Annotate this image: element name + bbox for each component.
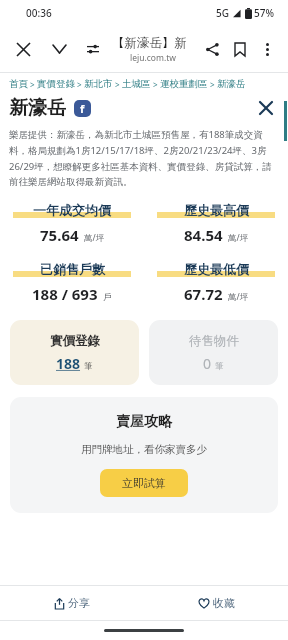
staticText: 分享 bbox=[68, 596, 90, 610]
staticText: 5G bbox=[216, 6, 229, 20]
staticText: 已銷售戶數 bbox=[40, 261, 105, 277]
staticText: f bbox=[80, 101, 85, 116]
button[interactable]: 土城區 bbox=[122, 78, 151, 90]
staticText: 用門牌地址，看你家賣多少 bbox=[81, 443, 207, 456]
staticText: 一年成交均價 bbox=[33, 202, 111, 218]
staticText: 筆 bbox=[84, 361, 93, 372]
staticText: > bbox=[75, 79, 84, 90]
button[interactable]: 新北市 bbox=[84, 78, 113, 90]
button[interactable]: 首頁 bbox=[9, 78, 28, 90]
staticText: 00:36 bbox=[26, 6, 52, 20]
button[interactable]: Bookmark bbox=[226, 35, 254, 63]
staticText: 筆 bbox=[215, 361, 224, 372]
staticText: > bbox=[28, 79, 37, 90]
button[interactable]: 實價登錄 bbox=[37, 78, 75, 90]
staticText: > bbox=[151, 79, 160, 90]
staticText: 萬/坪 bbox=[228, 291, 249, 303]
button[interactable]: 立即試算 bbox=[100, 469, 188, 497]
staticText: 188 bbox=[56, 354, 81, 373]
button[interactable]: Expand bbox=[44, 34, 74, 64]
staticText: 待售物件 bbox=[189, 333, 239, 349]
button[interactable]: Close bbox=[253, 95, 279, 121]
staticText: 萬/坪 bbox=[228, 232, 249, 244]
staticText: 賣屋攻略 bbox=[116, 413, 172, 431]
staticText: 188 / 693 bbox=[32, 284, 98, 304]
staticText: 戶 bbox=[103, 292, 112, 303]
button[interactable]: Close bbox=[8, 34, 38, 64]
staticText: 立即試算 bbox=[122, 476, 166, 490]
staticText: 實價登錄 bbox=[50, 333, 100, 349]
staticText: 0 bbox=[203, 354, 212, 373]
staticText: > bbox=[113, 79, 122, 90]
staticText: 樂居提供：新濠岳，為新北市土城區預售屋，有188筆成交資料，格局規劃為1房12/… bbox=[9, 128, 279, 188]
staticText: leju.com.tw bbox=[130, 52, 176, 64]
button[interactable]: Share on Facebook bbox=[74, 100, 91, 117]
button[interactable]: 已銷售戶數 bbox=[0, 261, 144, 304]
button[interactable]: 運校重劃區 bbox=[160, 78, 208, 90]
staticText: 57% bbox=[254, 6, 274, 20]
button[interactable]: 收藏 bbox=[144, 596, 288, 610]
button[interactable]: 新濠岳 bbox=[217, 78, 246, 90]
staticText: > bbox=[208, 79, 217, 90]
button[interactable]: 歷史最低價 bbox=[144, 261, 288, 304]
staticText: 歷史最低價 bbox=[184, 261, 249, 277]
button[interactable]: 待售物件 bbox=[149, 320, 278, 385]
button[interactable]: 【新濠岳】新北… bbox=[112, 35, 194, 64]
staticText: 75.64 bbox=[40, 225, 79, 245]
staticText: 67.72 bbox=[184, 284, 223, 304]
button[interactable]: 實價登錄 bbox=[10, 320, 139, 385]
staticText: 萬/坪 bbox=[84, 232, 105, 244]
button[interactable]: 歷史最高價 bbox=[144, 202, 288, 245]
button[interactable]: Share bbox=[198, 35, 226, 63]
button[interactable]: More options bbox=[254, 36, 280, 62]
staticText: 【新濠岳】新北… bbox=[112, 35, 194, 51]
staticText: 歷史最高價 bbox=[184, 202, 249, 218]
staticText: 新濠岳 bbox=[9, 96, 66, 120]
button[interactable]: 一年成交均價 bbox=[0, 202, 144, 245]
staticText: 收藏 bbox=[213, 596, 235, 610]
button[interactable]: Page settings bbox=[78, 34, 108, 64]
staticText: 84.54 bbox=[184, 225, 223, 245]
button[interactable]: 分享 bbox=[0, 596, 144, 610]
